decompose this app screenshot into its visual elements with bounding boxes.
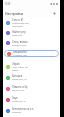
button[interactable]: Батарея	[3, 72, 60, 83]
staticText: 9:30	[5, 2, 11, 6]
staticText: Спец. возмо	[12, 40, 28, 44]
button[interactable]: Найти устр	[3, 28, 60, 38]
staticText: точка дост	[12, 25, 24, 28]
staticText: Память и Хр	[12, 85, 28, 89]
staticText: Заряд 82%, ос	[12, 78, 27, 81]
button[interactable]: Search	[52, 11, 57, 16]
button[interactable]: Память и Хр	[3, 83, 60, 94]
staticText: Занято 62%	[12, 89, 25, 92]
button[interactable]: Звук	[3, 94, 60, 105]
button[interactable]: Спец. возмо	[3, 38, 60, 48]
staticText: Звук	[12, 96, 18, 100]
staticText: Найти устр	[12, 30, 26, 34]
staticText: Средства для	[12, 44, 27, 47]
button[interactable]: Сеть и И	[3, 18, 60, 28]
staticText: Блокиро	[12, 111, 22, 114]
button[interactable]: Безопасность и к	[3, 105, 60, 116]
staticText: Мобильная сеть,	[12, 22, 30, 25]
staticText: Тема, обои, зас	[12, 66, 29, 69]
staticText: История, раз	[13, 54, 27, 57]
staticText: Сеть и И	[12, 18, 23, 22]
staticText: Экран	[12, 62, 20, 66]
button[interactable]: Уведомлен	[4, 50, 59, 57]
staticText: Bluetooth	[12, 34, 23, 37]
staticText: Батарея	[12, 74, 23, 78]
button[interactable]: Экран	[3, 61, 60, 72]
staticText: Громкость, в	[12, 100, 26, 103]
staticText: Уведомлен	[13, 50, 28, 54]
staticText: Настройки	[5, 11, 24, 16]
staticText: разме	[12, 69, 19, 72]
staticText: Безопасность и к	[12, 107, 34, 111]
